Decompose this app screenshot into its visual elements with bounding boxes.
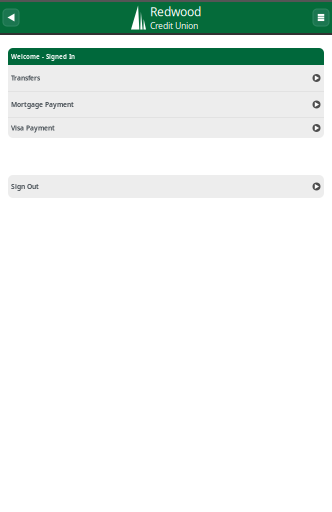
staticText: Visa Payment <box>11 123 55 133</box>
button[interactable]: Menu <box>313 9 329 26</box>
button[interactable]: Back <box>3 9 19 26</box>
staticText: Redwood <box>150 3 201 20</box>
staticText: Transfers <box>11 73 40 83</box>
staticText: Credit Union <box>150 20 198 32</box>
button[interactable]: Transfers <box>8 65 324 91</box>
staticText: Welcome - Signed In <box>11 52 75 61</box>
button[interactable]: Mortgage Payment <box>8 92 324 117</box>
staticText: Sign Out <box>11 182 39 191</box>
staticText: Mortgage Payment <box>11 100 74 109</box>
button[interactable]: Visa Payment <box>8 118 324 138</box>
button[interactable]: Sign Out <box>8 175 324 198</box>
